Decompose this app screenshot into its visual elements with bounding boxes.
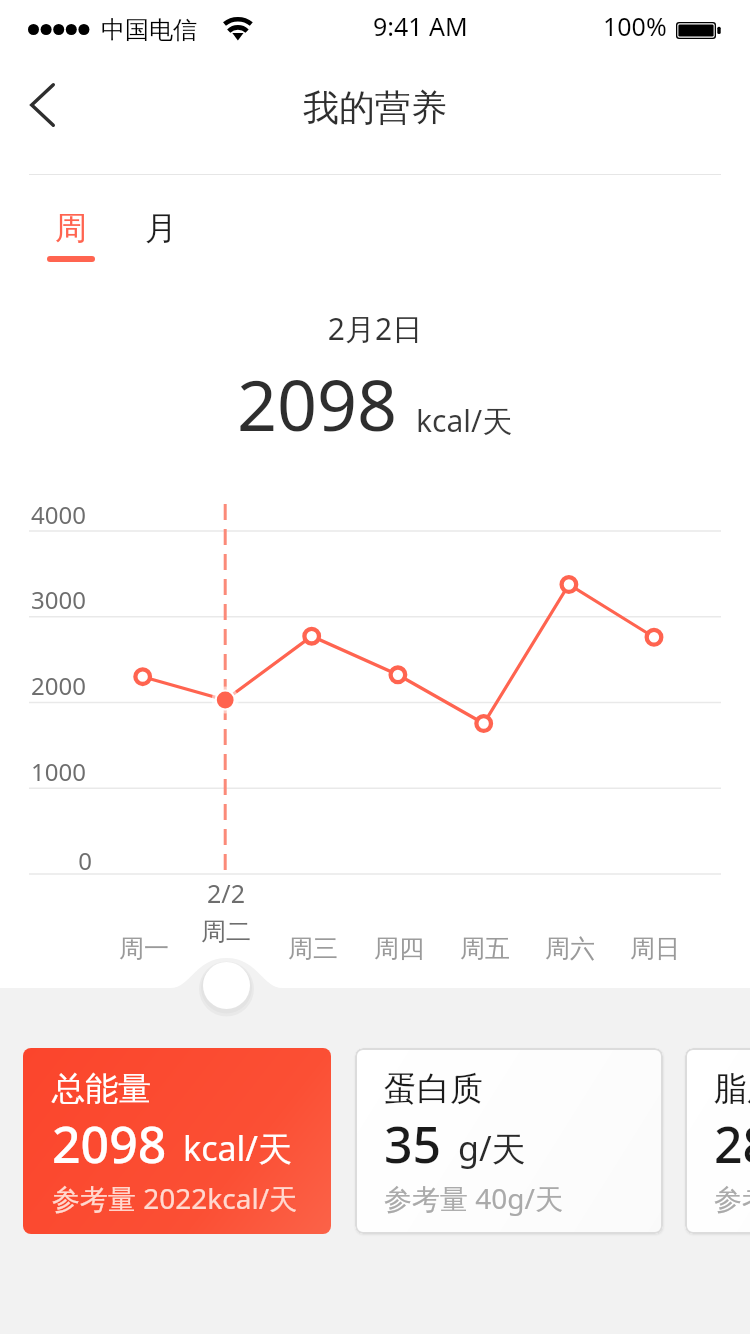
button[interactable]: 蛋白质 bbox=[355, 1048, 663, 1234]
staticText: 脂肪 bbox=[714, 1068, 750, 1110]
staticText: 参考量 40g/天 bbox=[384, 1179, 563, 1217]
staticText: 周三 bbox=[268, 933, 358, 964]
staticText: kcal/天 bbox=[416, 400, 513, 441]
staticText: 周一 bbox=[99, 933, 189, 964]
staticText: 总能量 bbox=[52, 1068, 151, 1110]
staticText: 4000 bbox=[2, 498, 86, 531]
staticText: 周六 bbox=[525, 933, 615, 964]
staticText: 蛋白质 bbox=[384, 1068, 483, 1110]
staticText: kcal/天 bbox=[183, 1125, 292, 1171]
staticText: g/天 bbox=[458, 1125, 526, 1171]
staticText: 我的营养 bbox=[0, 85, 750, 130]
staticText: 0 bbox=[8, 844, 92, 877]
button[interactable]: 月 bbox=[132, 200, 190, 256]
staticText: 2/2 bbox=[181, 876, 271, 910]
staticText: 2098 bbox=[237, 356, 398, 451]
staticText: 参考量 2022kcal/天 bbox=[52, 1179, 298, 1217]
staticText: 2000 bbox=[2, 669, 86, 702]
staticText: 9:41 AM bbox=[373, 9, 468, 43]
button[interactable]: 脂肪 bbox=[685, 1048, 750, 1234]
staticText: 周四 bbox=[354, 933, 444, 964]
staticText: 中国电信 bbox=[101, 15, 197, 45]
button[interactable]: 周 bbox=[42, 200, 100, 272]
button[interactable]: 总能量 bbox=[23, 1048, 331, 1234]
staticText: 100% bbox=[603, 9, 667, 43]
staticText: 周 bbox=[42, 208, 100, 248]
staticText: 28 bbox=[714, 1110, 750, 1178]
staticText: 3000 bbox=[2, 583, 86, 616]
staticText: 周二 bbox=[181, 916, 271, 947]
staticText: 月 bbox=[132, 208, 190, 248]
staticText: 周五 bbox=[440, 933, 530, 964]
staticText: 参考量 30g/天 bbox=[714, 1179, 750, 1217]
staticText: 周日 bbox=[610, 933, 700, 964]
staticText: 1000 bbox=[2, 755, 86, 788]
staticText: 2098 bbox=[52, 1110, 167, 1178]
staticText: 35 bbox=[384, 1110, 442, 1178]
button[interactable]: Back bbox=[2, 55, 82, 155]
staticText: 2月2日 bbox=[0, 308, 750, 349]
